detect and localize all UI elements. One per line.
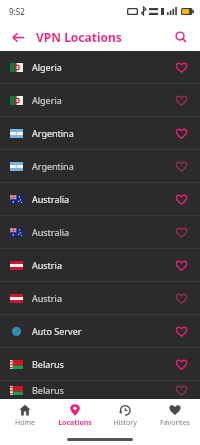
button[interactable]: History	[100, 402, 150, 430]
button[interactable]: Favorite Algeria	[173, 59, 190, 76]
staticText: VPN Locations	[36, 29, 122, 45]
button[interactable]: Australia	[0, 216, 200, 248]
staticText: Australia	[32, 193, 70, 205]
button[interactable]: Austria	[0, 282, 200, 314]
button[interactable]: Search	[171, 27, 191, 47]
button[interactable]: Favorite Argentina	[173, 158, 190, 175]
button[interactable]: Favorite Algeria	[173, 92, 190, 109]
staticText: Belarus	[32, 384, 64, 396]
staticText: Algeria	[32, 94, 62, 106]
button[interactable]: Algeria	[0, 51, 200, 83]
staticText: Algeria	[32, 61, 62, 73]
staticText: Austria	[32, 259, 62, 271]
staticText: Favorites	[160, 418, 190, 428]
button[interactable]: Austria	[0, 249, 200, 281]
staticText: History	[113, 418, 137, 428]
staticText: Argentina	[32, 127, 74, 139]
staticText: Auto Server	[32, 325, 82, 337]
button[interactable]: Favorite Belarus	[173, 356, 190, 373]
staticText: Home	[15, 418, 35, 428]
button[interactable]: Favorite Austria	[173, 257, 190, 274]
staticText: Australia	[32, 226, 70, 238]
button[interactable]: Algeria	[0, 84, 200, 116]
button[interactable]: Argentina	[0, 117, 200, 149]
button[interactable]: Favorite Austria	[173, 290, 190, 307]
button[interactable]: Auto Server	[0, 315, 200, 347]
staticText: Locations	[58, 418, 92, 428]
staticText: Argentina	[32, 160, 74, 172]
button[interactable]: Favorites	[150, 402, 200, 430]
button[interactable]: Belarus	[0, 348, 200, 380]
button[interactable]: Favorite Argentina	[173, 125, 190, 142]
button[interactable]: Favorite Australia	[173, 191, 190, 208]
staticText: Austria	[32, 292, 62, 304]
button[interactable]: Home	[0, 402, 50, 430]
button[interactable]: Back	[8, 27, 28, 47]
button[interactable]: Favorite Auto Server	[173, 323, 190, 340]
button[interactable]: Argentina	[0, 150, 200, 182]
staticText: Belarus	[32, 358, 64, 370]
staticText: 9:52	[9, 6, 25, 17]
button[interactable]: Locations	[50, 402, 100, 430]
button[interactable]: Belarus	[0, 381, 200, 399]
button[interactable]: Favorite Australia	[173, 224, 190, 241]
button[interactable]: Favorite Belarus	[173, 382, 190, 399]
button[interactable]: Australia	[0, 183, 200, 215]
